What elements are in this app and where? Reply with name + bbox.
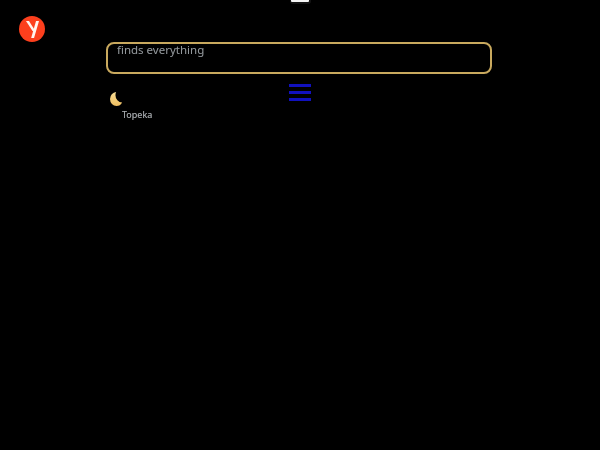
button[interactable]: Menu [289, 84, 311, 101]
staticText: Topeka [122, 108, 153, 120]
staticText: finds everything [117, 42, 205, 58]
button[interactable]: finds everything [106, 42, 492, 74]
button[interactable]: Yandex account [19, 16, 45, 42]
button[interactable]: Weather in Topeka [104, 88, 170, 122]
